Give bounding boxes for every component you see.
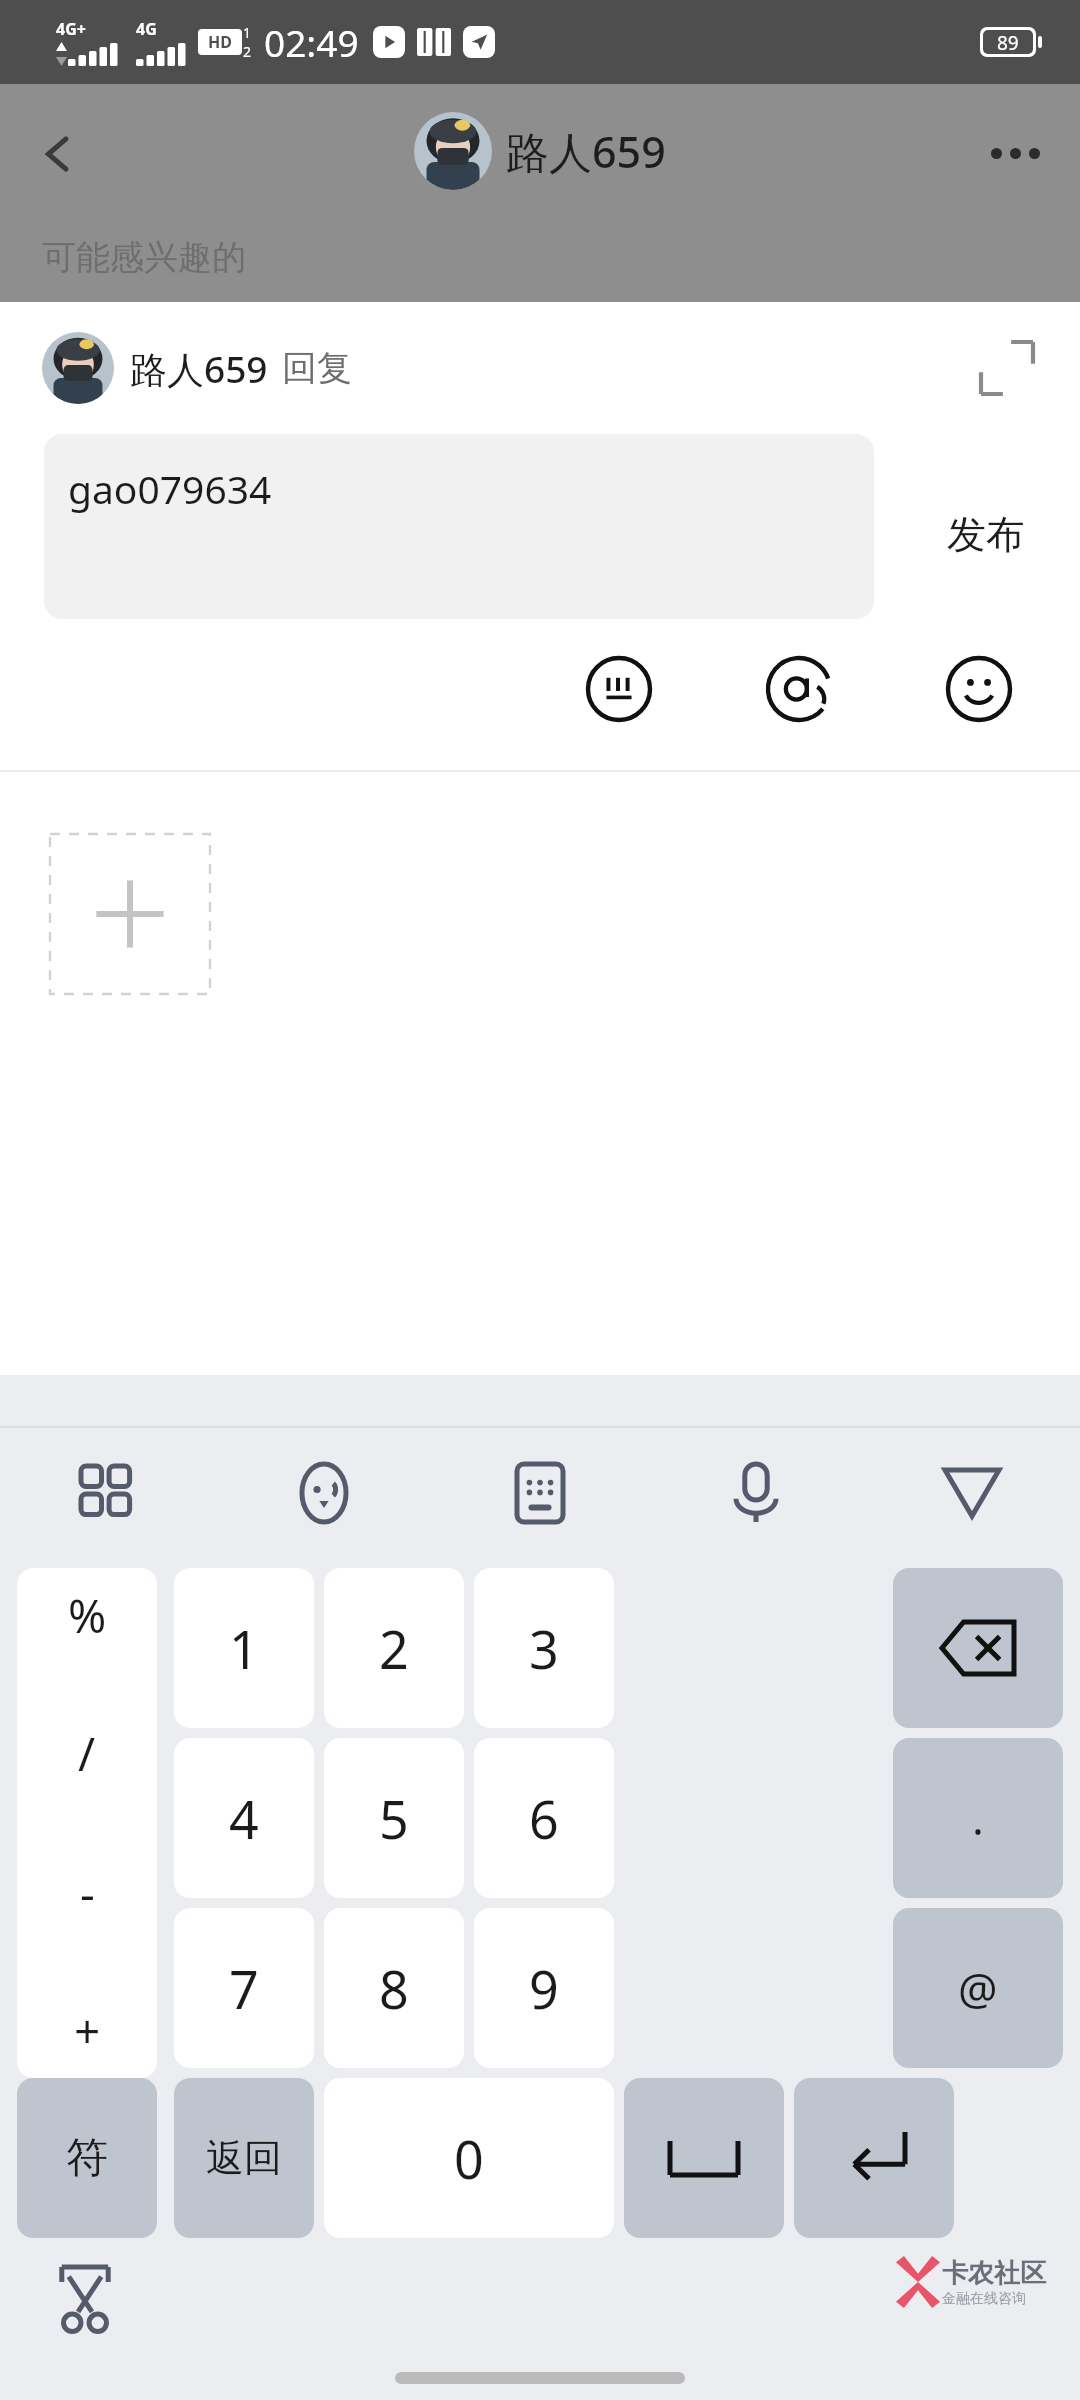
staticText: 符 [66, 2132, 108, 2185]
staticText: 4G [136, 18, 157, 40]
staticText: 4G+ [56, 18, 86, 40]
button[interactable]: 路人659 [414, 112, 666, 190]
button[interactable]: Emoji [216, 1428, 432, 1558]
staticText: 发布 [947, 510, 1025, 559]
staticText: 回复 [282, 346, 352, 390]
button[interactable]: . [893, 1738, 1063, 1898]
button[interactable]: Add image [50, 834, 210, 994]
staticText: 返回 [206, 2134, 282, 2182]
staticText: 卡农社区 [942, 2257, 1046, 2290]
button[interactable]: Enter [794, 2078, 954, 2238]
button[interactable]: 6 [474, 1738, 614, 1898]
button[interactable]: 2 [324, 1568, 464, 1728]
staticText: gao079634 [68, 462, 272, 515]
button[interactable]: % [17, 1568, 157, 2078]
button[interactable]: 发布 [906, 474, 1066, 594]
button[interactable]: 符 [17, 2078, 157, 2238]
button[interactable]: Expand [968, 329, 1046, 407]
staticText: 0 [454, 2123, 484, 2194]
button[interactable]: Backspace [893, 1568, 1063, 1728]
button[interactable]: Hide keyboard [864, 1428, 1080, 1558]
button[interactable]: Apps [0, 1428, 216, 1558]
staticText: 9 [529, 1953, 559, 2024]
staticText: 2 [379, 1613, 409, 1684]
staticText: HD [208, 31, 232, 53]
button[interactable]: More options [972, 110, 1058, 196]
staticText: 7 [229, 1953, 259, 2024]
staticText: 02:49 [264, 17, 359, 67]
staticText: 1 [243, 23, 252, 42]
staticText: @ [958, 1958, 998, 2018]
staticText: 6 [529, 1783, 559, 1854]
button[interactable]: 5 [324, 1738, 464, 1898]
staticText: 2 [243, 42, 252, 61]
button[interactable]: Keyboard layout [432, 1428, 648, 1558]
button[interactable]: 3 [474, 1568, 614, 1728]
button[interactable]: 9 [474, 1908, 614, 2068]
button[interactable]: Keyboard [576, 646, 662, 732]
button[interactable]: gao079634 [44, 434, 874, 619]
button[interactable]: 1 [174, 1568, 314, 1728]
button[interactable]: Clipboard [40, 2256, 130, 2346]
button[interactable]: 8 [324, 1908, 464, 2068]
button[interactable]: Back [10, 106, 106, 202]
button[interactable]: @ [893, 1908, 1063, 2068]
staticText: + [74, 1999, 101, 2062]
staticText: 89 [997, 30, 1019, 54]
staticText: - [80, 1861, 95, 1924]
staticText: 1 [229, 1613, 259, 1684]
staticText: 金融在线咨询 [942, 2290, 1026, 2308]
button[interactable]: Space [624, 2078, 784, 2238]
staticText: / [78, 1722, 96, 1785]
staticText: % [68, 1584, 107, 1647]
button[interactable]: 7 [174, 1908, 314, 2068]
staticText: 8 [379, 1953, 409, 2024]
button[interactable]: 返回 [174, 2078, 314, 2238]
staticText: 3 [529, 1613, 559, 1684]
button[interactable]: Voice input [648, 1428, 864, 1558]
button[interactable]: Emoji [936, 646, 1022, 732]
button[interactable]: 4 [174, 1738, 314, 1898]
button[interactable]: 0 [324, 2078, 614, 2238]
staticText: 可能感兴趣的 [42, 236, 246, 279]
staticText: 5 [379, 1783, 409, 1854]
staticText: 路人659 [506, 122, 666, 181]
staticText: 4 [229, 1783, 259, 1854]
button[interactable]: Mention [756, 646, 842, 732]
staticText: . [972, 1788, 984, 1848]
staticText: 路人659 [130, 343, 268, 394]
